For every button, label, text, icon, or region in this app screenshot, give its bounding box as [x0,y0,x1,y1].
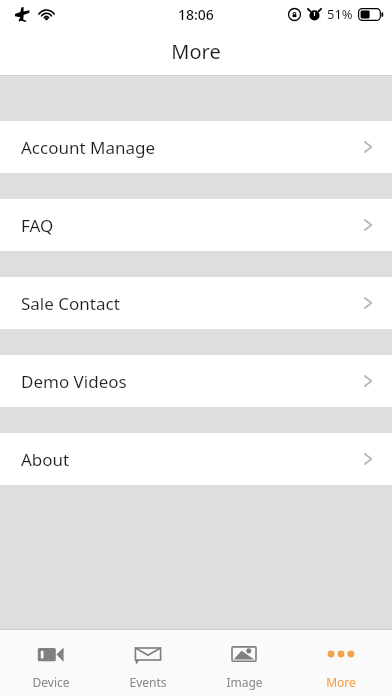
button[interactable]: About [0,433,392,485]
staticText: About [21,448,70,471]
staticText: 51% [327,5,353,23]
button[interactable]: FAQ [0,199,392,251]
staticText: 18:06 [178,5,214,24]
button[interactable]: Image [199,630,289,696]
button[interactable]: Sale Contact [0,277,392,329]
staticText: FAQ [21,214,54,237]
staticText: Device [32,674,70,690]
staticText: Account Manage [21,136,156,159]
staticText: Events [129,674,167,690]
button[interactable]: Account Manage [0,121,392,173]
button[interactable]: Events [103,630,193,696]
button[interactable]: Device [6,630,96,696]
button[interactable]: More [296,630,386,696]
staticText: More [171,38,221,65]
staticText: More [326,674,356,690]
staticText: Image [226,674,263,690]
staticText: Demo Videos [21,370,127,393]
button[interactable]: Demo Videos [0,355,392,407]
staticText: Sale Contact [21,292,120,315]
